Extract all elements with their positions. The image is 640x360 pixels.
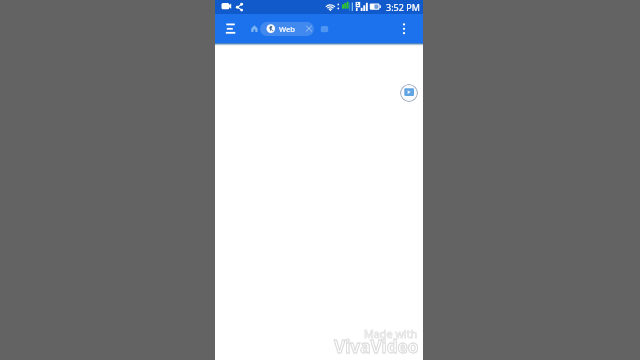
button[interactable]: New tab xyxy=(318,14,331,43)
staticText: Web xyxy=(279,24,296,34)
staticText: Made with xyxy=(364,326,418,341)
button[interactable]: Home xyxy=(248,14,262,43)
button[interactable]: Video xyxy=(400,84,418,102)
staticText: 3:52 PM xyxy=(386,1,420,13)
button[interactable]: More options xyxy=(398,14,412,43)
staticText: VivaVideo xyxy=(334,335,419,358)
button[interactable]: Menu xyxy=(220,14,241,43)
button[interactable]: Web xyxy=(260,22,314,36)
